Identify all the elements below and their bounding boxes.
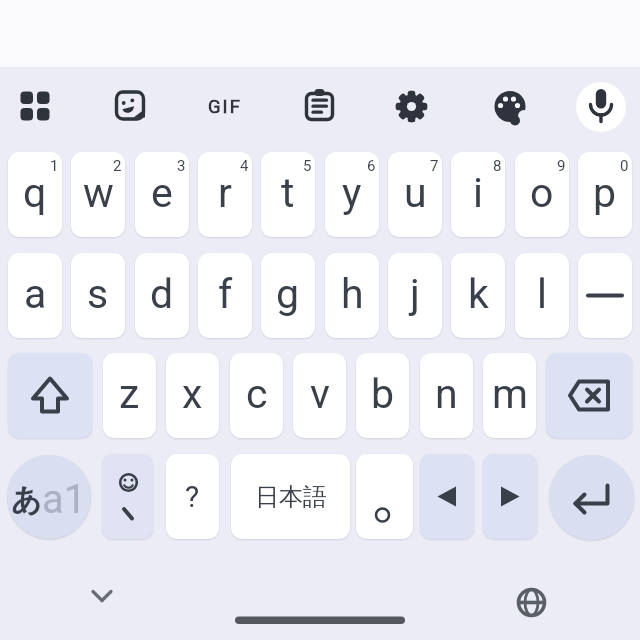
button[interactable]	[298, 85, 342, 129]
staticText: 5	[303, 157, 312, 175]
button[interactable]: e	[135, 152, 189, 237]
staticText: r	[218, 169, 232, 217]
staticText: u	[404, 169, 427, 217]
staticText: y	[342, 169, 362, 217]
button[interactable]	[549, 455, 634, 540]
staticText: あ	[11, 481, 42, 519]
staticText: j	[410, 270, 420, 318]
staticText: f	[218, 270, 233, 318]
button[interactable]	[102, 454, 153, 539]
button[interactable]	[513, 584, 550, 621]
button[interactable]	[420, 454, 474, 539]
button[interactable]	[108, 84, 152, 128]
button[interactable]: y	[325, 152, 379, 237]
button[interactable]: l	[515, 253, 569, 338]
button[interactable]: v	[293, 353, 346, 438]
button[interactable]: h	[325, 253, 379, 338]
button[interactable]: GIF	[203, 85, 247, 129]
staticText: d	[150, 270, 174, 318]
staticText: 1	[50, 157, 59, 175]
button[interactable]: o	[515, 152, 569, 237]
staticText: q	[23, 169, 47, 217]
button[interactable]	[84, 578, 120, 614]
button[interactable]	[488, 85, 532, 129]
staticText: 7	[430, 157, 439, 175]
button[interactable]: r	[198, 152, 252, 237]
staticText: g	[276, 270, 300, 318]
staticText: n	[435, 370, 458, 418]
button[interactable]: b	[356, 353, 409, 438]
button[interactable]: k	[451, 253, 505, 338]
button[interactable]	[483, 454, 537, 539]
staticText: 3	[177, 157, 186, 175]
button[interactable]: p	[578, 152, 632, 237]
staticText: p	[593, 169, 617, 217]
staticText: v	[310, 370, 330, 418]
staticText: o	[530, 169, 554, 217]
staticText: w	[83, 169, 114, 217]
button[interactable]	[13, 85, 57, 129]
button[interactable]: ?	[166, 454, 219, 539]
staticText: t	[281, 169, 295, 217]
button[interactable]: i	[451, 152, 505, 237]
staticText: 0	[620, 157, 629, 175]
staticText: 9	[557, 157, 566, 175]
staticText: k	[468, 270, 489, 318]
staticText: c	[246, 370, 268, 418]
button[interactable]	[356, 454, 413, 539]
staticText: ?	[185, 479, 200, 514]
staticText: z	[119, 370, 140, 418]
staticText: 4	[240, 157, 249, 175]
button[interactable]	[576, 82, 626, 132]
button[interactable]: z	[103, 353, 156, 438]
staticText: GIF	[208, 96, 242, 118]
button[interactable]	[8, 353, 92, 438]
staticText: 2	[113, 157, 122, 175]
button[interactable]: q	[8, 152, 62, 237]
button[interactable]: s	[71, 253, 125, 338]
button[interactable]: d	[135, 253, 189, 338]
staticText: 8	[493, 157, 502, 175]
staticText: e	[151, 169, 173, 217]
button[interactable]: あ	[7, 455, 91, 539]
button[interactable]	[578, 253, 632, 338]
staticText: h	[341, 270, 364, 318]
staticText: m	[492, 370, 528, 418]
button[interactable]: f	[198, 253, 252, 338]
staticText: a1	[42, 476, 87, 523]
button[interactable]: u	[388, 152, 442, 237]
staticText: 日本語	[255, 482, 327, 512]
staticText: 6	[367, 157, 376, 175]
button[interactable]: a	[8, 253, 62, 338]
staticText: i	[473, 169, 483, 217]
staticText: a	[24, 270, 47, 318]
button[interactable]: j	[388, 253, 442, 338]
button[interactable]	[390, 85, 434, 129]
button[interactable]: 日本語	[231, 454, 350, 539]
button[interactable]: w	[71, 152, 125, 237]
button[interactable]: n	[420, 353, 473, 438]
button[interactable]: x	[166, 353, 219, 438]
staticText: s	[87, 270, 109, 318]
staticText: x	[182, 370, 203, 418]
staticText: b	[371, 370, 395, 418]
button[interactable]: t	[261, 152, 315, 237]
button[interactable]: g	[261, 253, 315, 338]
staticText: l	[537, 270, 547, 318]
button[interactable]	[546, 353, 632, 438]
button[interactable]: m	[483, 353, 536, 438]
button[interactable]: c	[230, 353, 283, 438]
